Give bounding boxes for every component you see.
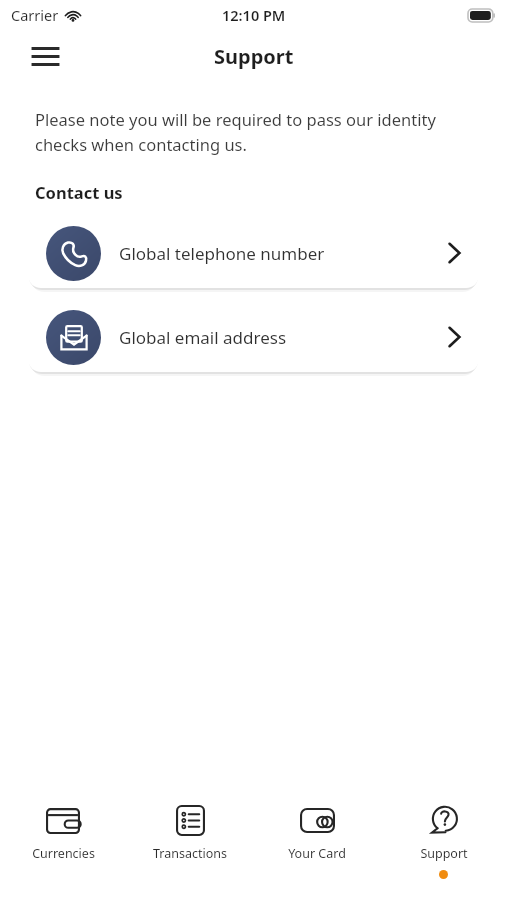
button[interactable]: Currencies bbox=[0, 801, 126, 879]
button[interactable]: Transactions bbox=[126, 801, 253, 879]
button[interactable]: Global email address bbox=[28, 302, 479, 372]
staticText: Please note you will be required to pass… bbox=[35, 108, 467, 155]
staticText: Support bbox=[420, 845, 468, 862]
staticText: Global telephone number bbox=[119, 242, 325, 265]
staticText: Support bbox=[214, 43, 294, 70]
button[interactable]: Your Card bbox=[253, 801, 380, 879]
staticText: Contact us bbox=[35, 181, 123, 203]
staticText: Your Card bbox=[288, 845, 346, 862]
button[interactable]: Support bbox=[380, 801, 507, 879]
button[interactable]: Menu bbox=[22, 33, 68, 79]
staticText: Global email address bbox=[119, 326, 287, 349]
staticText: Carrier bbox=[11, 5, 59, 25]
staticText: Currencies bbox=[32, 845, 95, 862]
button[interactable]: Global telephone number bbox=[28, 218, 479, 288]
staticText: Transactions bbox=[153, 845, 227, 862]
staticText: 12:10 PM bbox=[222, 5, 286, 25]
